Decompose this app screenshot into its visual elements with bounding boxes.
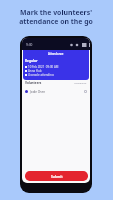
staticText: Mark the volunteers' bbox=[20, 8, 92, 17]
staticText: Attendance bbox=[74, 82, 87, 85]
staticText: Volunteers bbox=[25, 81, 42, 85]
button[interactable]: Jodie Chen bbox=[25, 88, 87, 95]
staticText: Jodie Chen bbox=[30, 90, 46, 94]
staticText: Regular bbox=[25, 59, 38, 63]
staticText: attendance on the go bbox=[19, 17, 93, 26]
staticText: Attendance bbox=[48, 52, 64, 56]
staticText: Submit bbox=[51, 174, 63, 178]
button[interactable]: Submit bbox=[25, 171, 88, 181]
staticText: 10 Feb 2021, 09:00 AM bbox=[28, 65, 59, 68]
staticText: Anna Hub bbox=[28, 69, 42, 72]
staticText: 9:30 bbox=[26, 43, 33, 47]
staticText: 4 people attending bbox=[28, 73, 54, 76]
button[interactable]: Mark attendance bbox=[84, 90, 87, 93]
